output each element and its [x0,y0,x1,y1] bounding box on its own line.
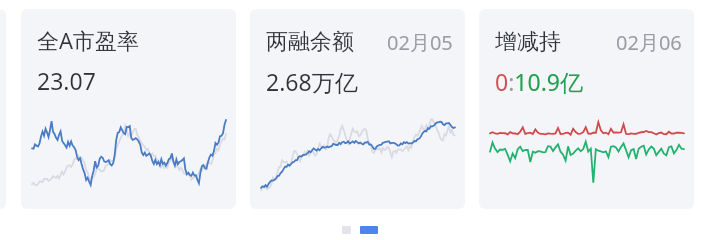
staticText: 2.68万亿 [266,66,358,97]
staticText: 0:10.9亿 [495,66,583,97]
button[interactable] [360,226,378,234]
staticText: 02月06 [616,29,682,56]
staticText: 02月05 [387,29,453,56]
staticText: 全A市盈率 [37,25,140,55]
button[interactable]: 增减持 [479,9,694,209]
staticText: 两融余额 [266,28,354,56]
button[interactable]: 两融余额 [250,9,465,209]
staticText: 23.07 [37,65,96,96]
staticText: 增减持 [495,28,561,56]
button[interactable]: 全A市盈率 [21,9,236,209]
